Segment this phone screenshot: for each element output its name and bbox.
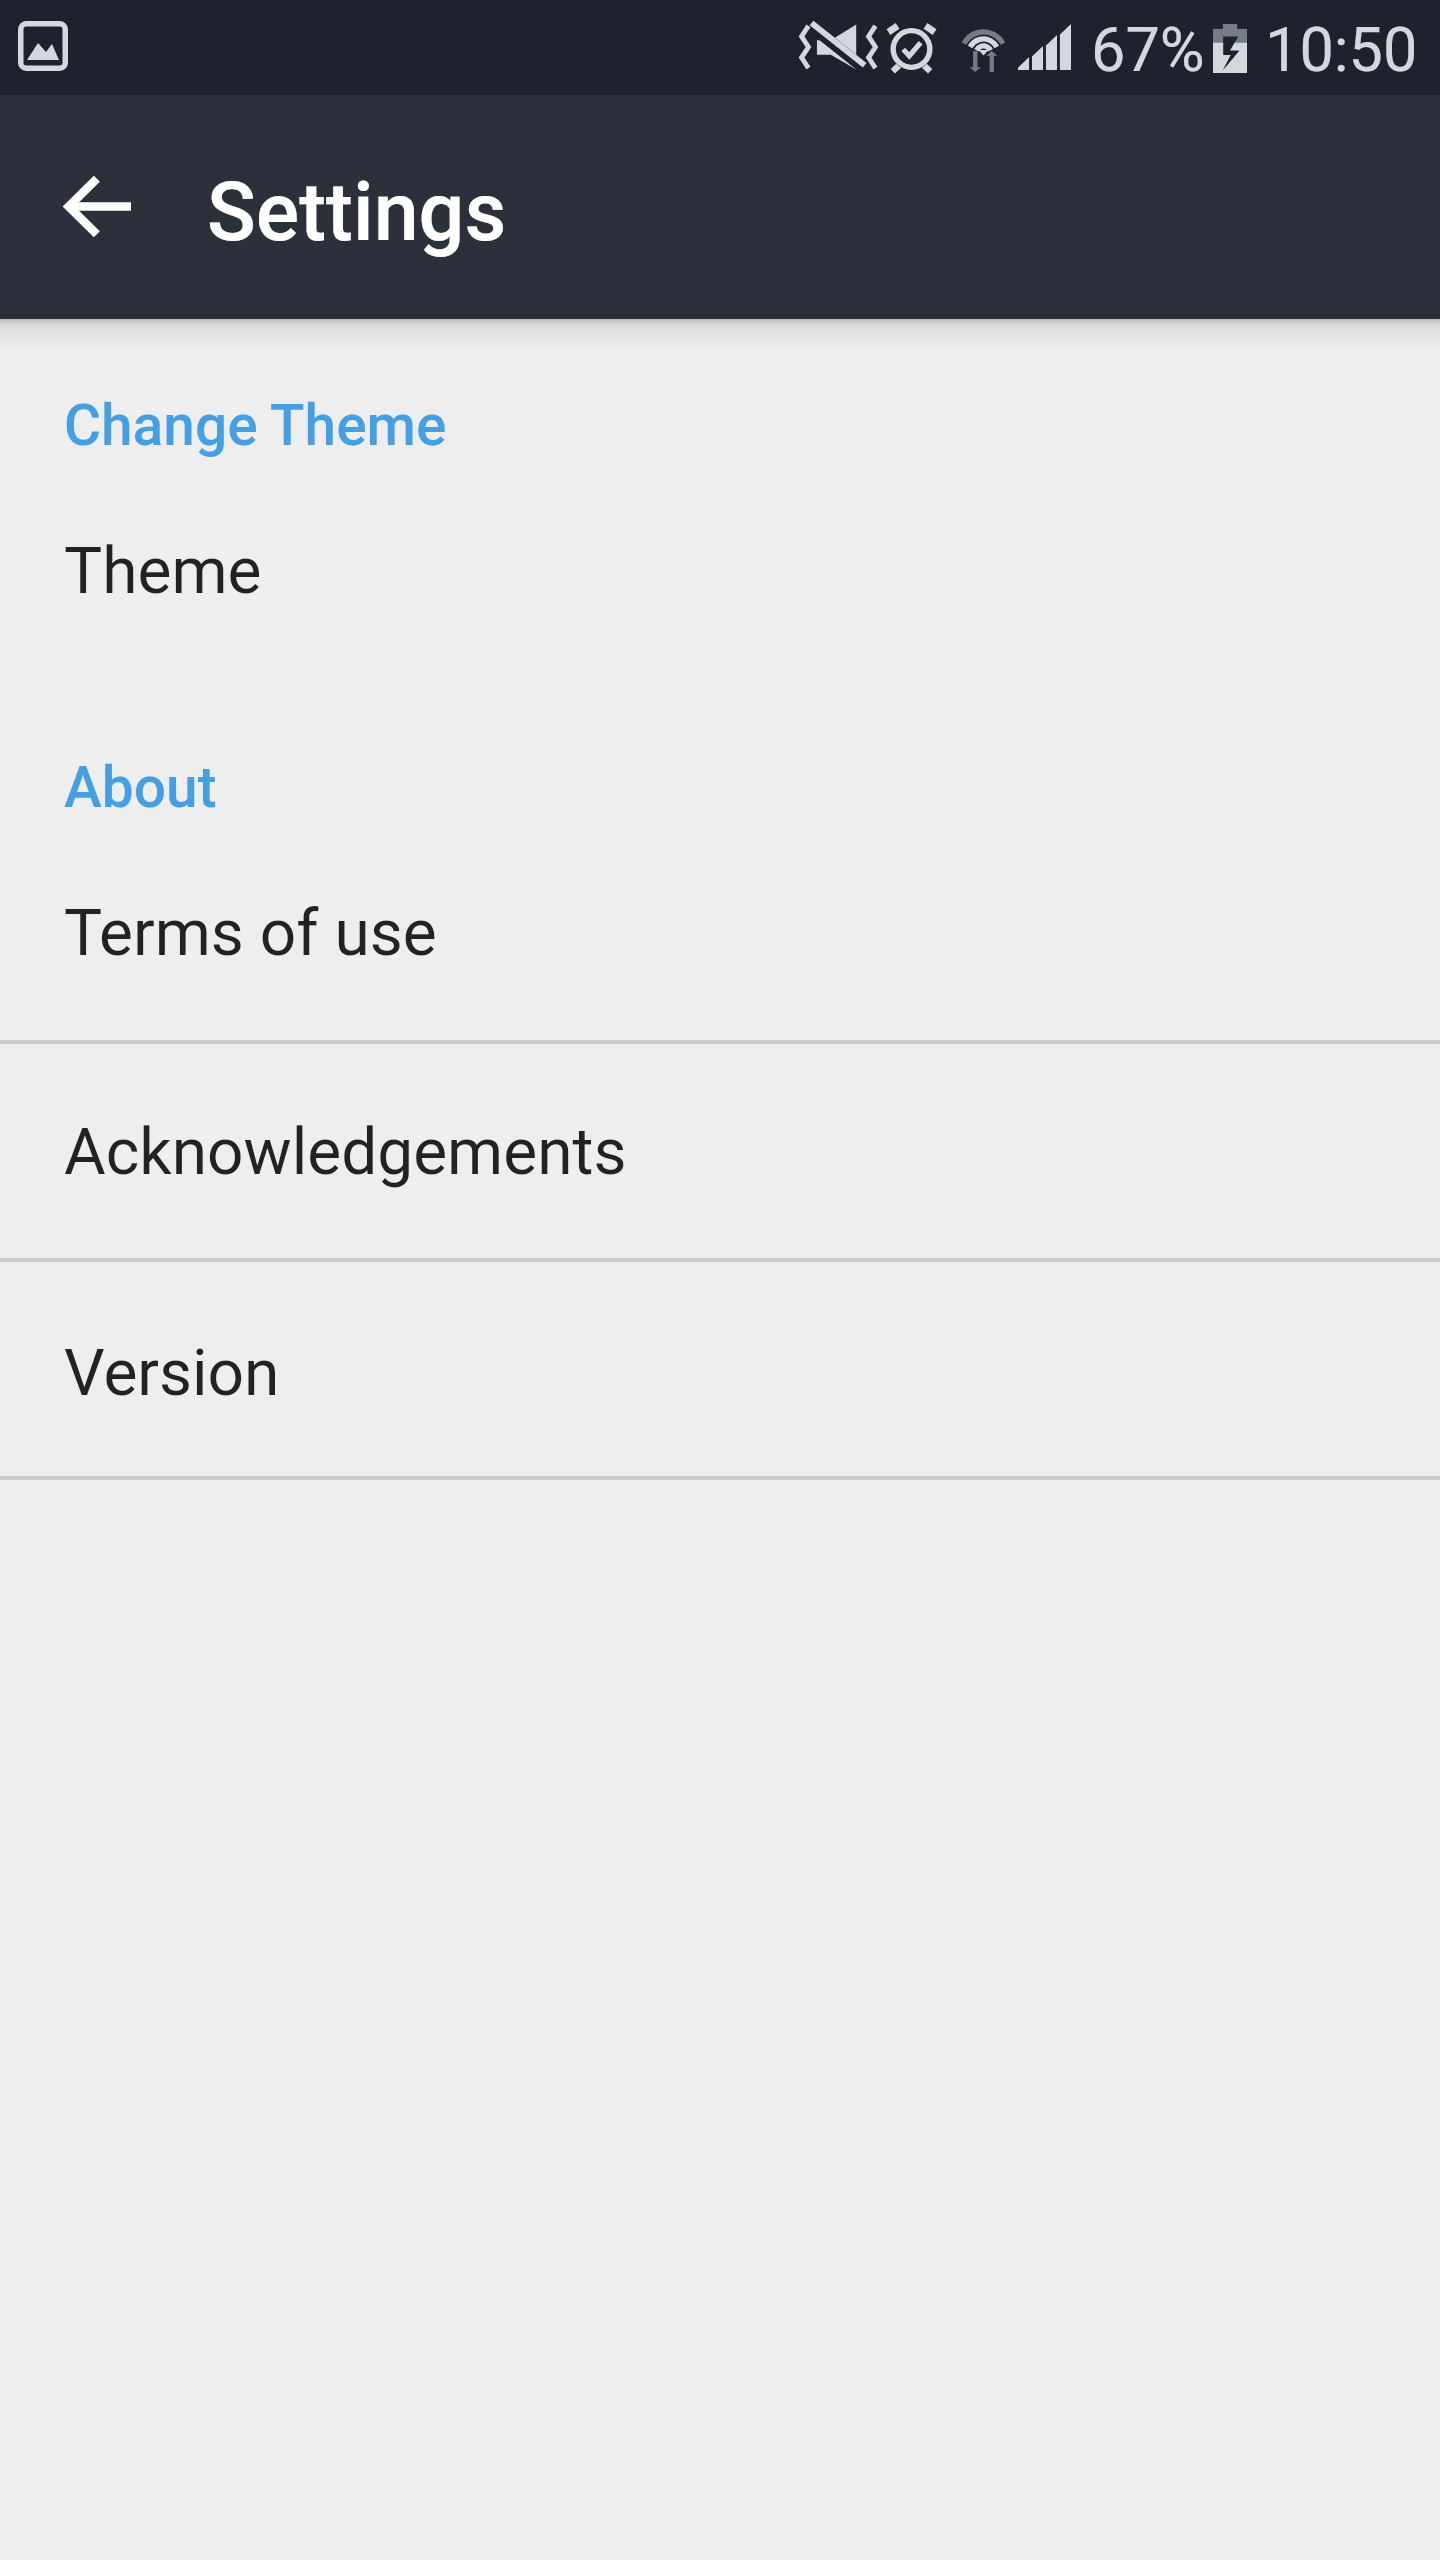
- staticText: Change Theme: [64, 392, 447, 459]
- staticText: Acknowledgements: [64, 1115, 627, 1190]
- button[interactable]: Terms of use: [0, 821, 1440, 1039]
- staticText: Terms of use: [64, 896, 437, 971]
- button[interactable]: Theme: [0, 465, 1440, 683]
- staticText: Theme: [64, 534, 262, 609]
- button[interactable]: Acknowledgements: [0, 1043, 1440, 1257]
- button[interactable]: Navigate up: [17, 126, 177, 286]
- staticText: 10:50: [1265, 14, 1418, 86]
- button[interactable]: Version: [0, 1261, 1440, 1475]
- staticText: Settings: [207, 165, 507, 260]
- staticText: 67%: [1091, 14, 1205, 86]
- staticText: Version: [64, 1336, 280, 1411]
- staticText: About: [64, 754, 217, 821]
